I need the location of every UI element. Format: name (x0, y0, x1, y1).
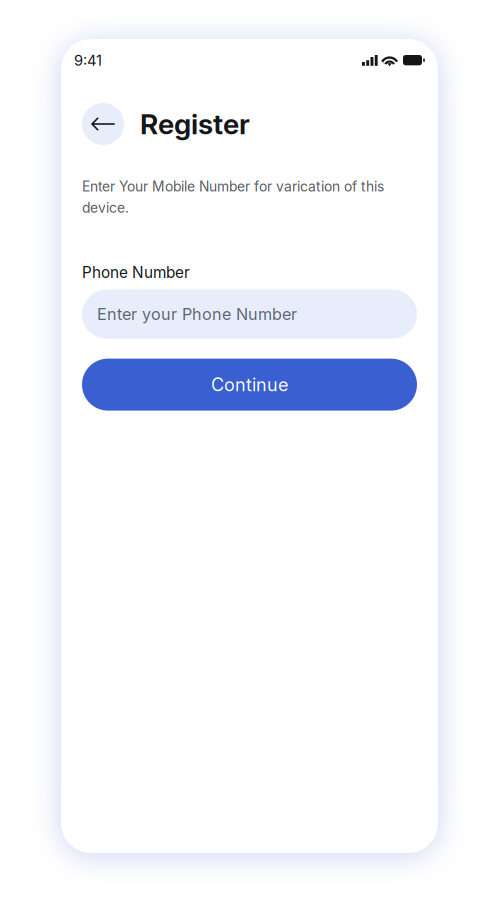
staticText: Enter your Phone Number (97, 304, 297, 324)
staticText: Phone Number (82, 263, 190, 282)
staticText: Register (140, 107, 250, 141)
button[interactable]: Back (82, 103, 124, 145)
staticText: Enter Your Mobile Number for varication … (82, 178, 384, 216)
button[interactable]: Enter your Phone Number (82, 290, 417, 339)
staticText: 9:41 (74, 52, 102, 69)
staticText: Continue (211, 374, 288, 395)
button[interactable]: Continue (82, 359, 417, 411)
